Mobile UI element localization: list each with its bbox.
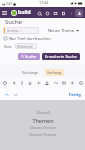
- button[interactable]: Link: [52, 79, 59, 86]
- button[interactable]: Erweiterte Suche: [42, 53, 80, 60]
- button[interactable]: List: [68, 79, 75, 86]
- button[interactable]: Search: [35, 9, 43, 17]
- button[interactable]: Überall: [0, 109, 85, 116]
- button[interactable]: Underline: [26, 79, 33, 86]
- button[interactable]: Notifications: [43, 9, 51, 17]
- button[interactable]: Suche...: [3, 27, 39, 34]
- button[interactable]: Bold: [10, 79, 17, 86]
- button[interactable]: Mitglied: [15, 43, 37, 49]
- staticText: Von:: [4, 44, 13, 49]
- button[interactable]: Italic: [18, 79, 25, 86]
- staticText: Suche...: [7, 28, 22, 33]
- button[interactable]: Open navigation menu: [0, 8, 9, 17]
- button[interactable]: Next field: [11, 90, 20, 99]
- button[interactable]: Vorhang: [45, 69, 64, 76]
- staticText: 3:47: [6, 2, 12, 6]
- button[interactable]: More options: [67, 9, 75, 17]
- button[interactable]: Themen: [0, 116, 85, 124]
- staticText: Suche: [5, 18, 22, 25]
- button[interactable]: Dieses Thema: [0, 131, 85, 138]
- staticText: Themen: [32, 117, 54, 124]
- staticText: Erweiterte Suche: [45, 54, 77, 59]
- button[interactable]: Bookmarks: [59, 9, 67, 17]
- staticText: Fertig: [69, 92, 81, 97]
- button[interactable]: Image: [60, 79, 67, 86]
- button[interactable]: Nur Titel durchsuchen: [4, 35, 85, 42]
- staticText: Mitglied: [17, 44, 33, 49]
- button[interactable]: Messages: [51, 9, 59, 17]
- button[interactable]: More formatting: [77, 79, 84, 86]
- staticText: Dieses Forum: [30, 125, 56, 130]
- button[interactable]: Vorhänge: [22, 70, 39, 75]
- staticText: Neues Thema: [48, 28, 74, 33]
- staticText: Nur Titel durchsuchen: [9, 36, 51, 41]
- button[interactable]: Strikethrough: [35, 79, 42, 86]
- button[interactable]: Previous field: [2, 90, 11, 99]
- button[interactable]: Suche: [18, 53, 40, 60]
- staticText: Dieses Thema: [29, 132, 56, 137]
- staticText: Vorhänge: [22, 70, 39, 75]
- button[interactable]: Text colour: [43, 79, 50, 86]
- staticText: 17:44: [39, 0, 48, 5]
- button[interactable]: Emoji: [1, 79, 8, 86]
- staticText: Suche: [25, 54, 37, 59]
- button[interactable]: Fertig: [67, 91, 83, 98]
- button[interactable]: Account: [75, 9, 83, 17]
- staticText: Vorhang: [47, 70, 62, 75]
- staticText: build: [18, 9, 31, 16]
- button[interactable]: Dieses Forum: [0, 124, 85, 131]
- button[interactable]: Neues Thema: [47, 28, 80, 33]
- staticText: Überall: [36, 110, 50, 115]
